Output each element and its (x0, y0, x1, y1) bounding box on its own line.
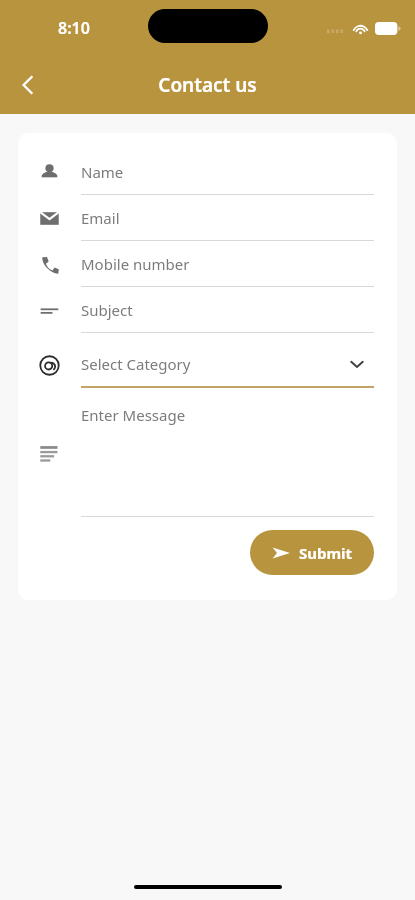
button[interactable]: Submit (250, 530, 374, 575)
button[interactable]: Name (18, 149, 397, 195)
staticText: Submit (299, 543, 353, 563)
button[interactable]: Back (6, 63, 50, 107)
staticText: Email (81, 208, 120, 228)
staticText: Contact us (158, 72, 257, 98)
staticText: Name (81, 162, 124, 182)
button[interactable]: Select Category (18, 342, 397, 388)
button[interactable]: Enter Message (81, 405, 186, 425)
staticText: 8:10 (58, 17, 90, 39)
button[interactable]: Subject (18, 287, 397, 333)
button[interactable]: Email (18, 195, 397, 241)
staticText: Select Category (81, 354, 348, 374)
staticText: Subject (81, 300, 133, 320)
button[interactable]: Mobile number (18, 241, 397, 287)
staticText: Mobile number (81, 254, 190, 274)
